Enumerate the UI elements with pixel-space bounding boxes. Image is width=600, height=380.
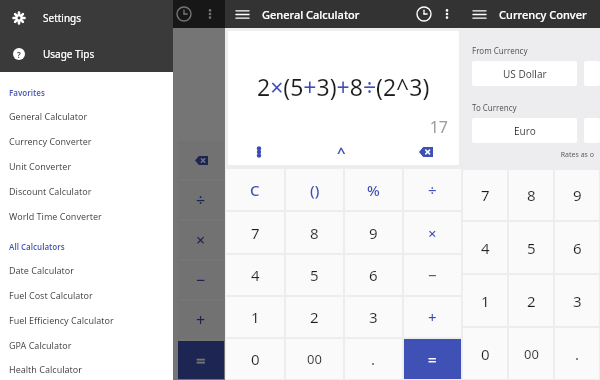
button[interactable]: GPA Calculator: [0, 332, 173, 357]
staticText: (): [310, 180, 320, 200]
staticText: .: [575, 344, 580, 364]
button[interactable]: 9: [345, 212, 402, 253]
button[interactable]: ÷: [404, 169, 461, 210]
button[interactable]: 3: [345, 297, 402, 337]
button[interactable]: 6: [555, 222, 599, 273]
button[interactable]: ^: [284, 138, 399, 165]
button[interactable]: %: [345, 169, 402, 210]
staticText: From Currency: [472, 45, 528, 56]
staticText: Usage Tips: [43, 47, 95, 61]
button[interactable]: 0: [463, 328, 507, 379]
staticText: Date Calculator: [9, 264, 75, 276]
button[interactable]: +: [404, 297, 461, 337]
staticText: Fuel Cost Calculator: [9, 289, 93, 301]
button[interactable]: =: [404, 339, 461, 379]
staticText: 1: [251, 307, 260, 327]
button[interactable]: 7: [226, 212, 284, 253]
button[interactable]: 00: [286, 339, 343, 379]
button[interactable]: −: [404, 255, 461, 295]
button[interactable]: 9: [555, 170, 599, 220]
staticText: 00: [307, 350, 322, 368]
button[interactable]: −: [178, 261, 224, 299]
button[interactable]: Unit Converter: [0, 153, 173, 178]
button[interactable]: 8: [509, 170, 553, 220]
button[interactable]: General Calculator: [0, 103, 173, 128]
button[interactable]: =: [178, 341, 224, 379]
button[interactable]: US Dollar: [472, 61, 577, 86]
button[interactable]: 1: [226, 297, 284, 337]
button[interactable]: Fuel Cost Calculator: [0, 282, 173, 307]
staticText: ÷: [428, 180, 437, 200]
staticText: Settings: [43, 11, 82, 25]
staticText: 6: [573, 238, 582, 258]
staticText: 3: [369, 307, 378, 327]
button[interactable]: 5: [509, 222, 553, 273]
staticText: All Calculators: [9, 241, 65, 252]
button[interactable]: History: [414, 4, 434, 24]
staticText: =: [196, 349, 206, 372]
staticText: %: [367, 180, 380, 200]
staticText: 6: [369, 265, 378, 285]
button[interactable]: Date Calculator: [0, 257, 173, 282]
button[interactable]: Backspace: [178, 141, 224, 179]
button[interactable]: 2: [286, 297, 343, 337]
staticText: 7: [251, 223, 260, 243]
staticText: Currency Conver: [499, 7, 587, 22]
button[interactable]: Euro: [472, 118, 577, 143]
button[interactable]: Open navigation drawer: [469, 4, 489, 24]
staticText: Fuel Efficiency Calculator: [9, 314, 114, 326]
staticText: 8: [527, 185, 536, 205]
button[interactable]: +: [178, 301, 224, 339]
button[interactable]: C: [226, 169, 284, 210]
staticText: 17: [228, 116, 448, 138]
button[interactable]: 3: [555, 275, 599, 326]
button[interactable]: (): [286, 169, 343, 210]
button[interactable]: ×: [404, 212, 461, 253]
button[interactable]: More options: [201, 5, 219, 23]
button[interactable]: ÷: [178, 181, 224, 219]
button[interactable]: 4: [463, 222, 507, 273]
button[interactable]: 00: [509, 328, 553, 379]
button[interactable]: 2: [509, 275, 553, 326]
staticText: −: [428, 265, 437, 285]
button[interactable]: 4: [226, 255, 284, 295]
button[interactable]: History: [173, 3, 195, 25]
button[interactable]: Health Calculator: [0, 357, 173, 380]
staticText: 0: [251, 349, 260, 369]
button[interactable]: 6: [345, 255, 402, 295]
button[interactable]: More options: [439, 6, 455, 22]
button[interactable]: More functions: [234, 138, 284, 165]
staticText: ^: [337, 142, 346, 162]
button[interactable]: Fuel Efficiency Calculator: [0, 307, 173, 332]
staticText: 2: [527, 291, 536, 311]
button[interactable]: 7: [463, 170, 507, 220]
button[interactable]: Settings: [0, 0, 173, 36]
staticText: 3: [573, 291, 582, 311]
button[interactable]: Currency Converter: [0, 128, 173, 153]
staticText: ×: [428, 223, 437, 243]
button[interactable]: Backspace: [399, 138, 453, 165]
button[interactable]: Discount Calculator: [0, 178, 173, 203]
staticText: GPA Calculator: [9, 339, 72, 351]
button[interactable]: ×: [178, 221, 224, 259]
staticText: 9: [369, 223, 378, 243]
staticText: General Calculator: [262, 7, 414, 22]
button[interactable]: .: [345, 339, 402, 379]
staticText: Discount Calculator: [9, 185, 92, 197]
button[interactable]: World Time Converter: [0, 203, 173, 228]
staticText: ?: [17, 49, 21, 60]
button[interactable]: ?: [0, 36, 173, 72]
button[interactable]: 0: [226, 339, 284, 379]
button[interactable]: 8: [286, 212, 343, 253]
staticText: C: [250, 180, 260, 200]
button[interactable]: 1: [463, 275, 507, 326]
button[interactable]: Open navigation drawer: [232, 4, 252, 24]
staticText: 5: [310, 265, 319, 285]
staticText: 7: [481, 185, 490, 205]
button[interactable]: .: [555, 328, 599, 379]
button[interactable]: 5: [286, 255, 343, 295]
staticText: 4: [251, 265, 260, 285]
staticText: 8: [310, 223, 319, 243]
